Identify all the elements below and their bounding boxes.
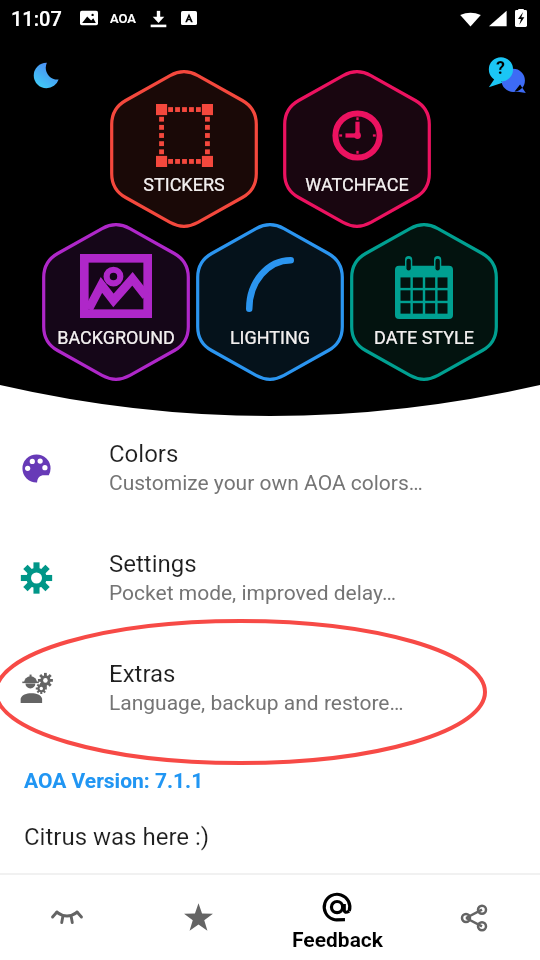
staticText: Pocket mode, improved delay… (109, 581, 396, 606)
button[interactable]: Hide (0, 873, 135, 960)
button[interactable]: LIGHTING (196, 219, 344, 385)
staticText: Colors (109, 440, 179, 468)
button[interactable]: Share (405, 873, 540, 960)
button[interactable]: WATCHFACE (283, 66, 431, 232)
button[interactable]: BACKGROUND (42, 219, 190, 385)
staticText: Citrus was here :) (24, 823, 210, 851)
staticText: Customize your own AOA colors… (109, 471, 423, 496)
staticText: Extras (109, 660, 176, 688)
staticText: Feedback (292, 928, 384, 953)
button[interactable]: Help (484, 52, 528, 96)
staticText: STICKERS (110, 174, 258, 195)
staticText: BACKGROUND (42, 327, 190, 348)
button[interactable]: Feedback (270, 873, 405, 960)
button[interactable]: DATE STYLE (350, 219, 498, 385)
staticText: LIGHTING (196, 327, 344, 348)
button[interactable]: STICKERS (110, 66, 258, 232)
staticText: Language, backup and restore… (109, 691, 404, 716)
button[interactable]: Colors (0, 424, 540, 512)
staticText: DATE STYLE (350, 327, 498, 348)
button[interactable]: Favorites (135, 873, 270, 960)
button[interactable]: Settings (0, 534, 540, 622)
staticText: ? (496, 57, 505, 78)
staticText: AOA (110, 11, 136, 26)
staticText: 11:07 (11, 7, 62, 30)
staticText: Settings (109, 550, 197, 578)
button[interactable]: Night mode (32, 61, 61, 90)
staticText: WATCHFACE (283, 174, 431, 195)
button[interactable]: Extras (0, 644, 540, 732)
staticText: AOA Version: 7.1.1 (24, 769, 204, 794)
